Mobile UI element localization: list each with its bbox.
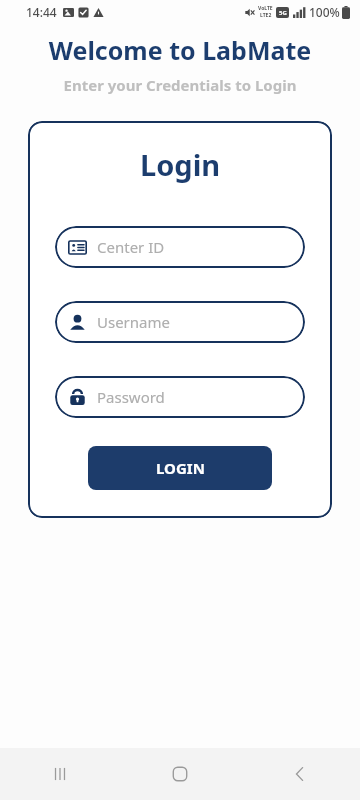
staticText: 100% (309, 4, 340, 20)
staticText: 5G (279, 9, 287, 17)
staticText: LOGIN (156, 458, 205, 478)
staticText: Password (97, 387, 165, 407)
button[interactable]: Username (55, 301, 305, 343)
button[interactable]: Center ID (55, 226, 305, 268)
staticText: 14:44 (26, 4, 57, 20)
button[interactable]: Recent apps (36, 750, 84, 798)
button[interactable]: LOGIN (88, 446, 272, 490)
button[interactable]: Home (156, 750, 204, 798)
staticText: LTE2 (260, 12, 272, 19)
staticText: Enter your Credentials to Login (0, 75, 360, 95)
button[interactable]: Password (55, 376, 305, 418)
button[interactable]: Back (276, 750, 324, 798)
staticText: Login (140, 145, 221, 184)
staticText: Welcome to LabMate (0, 33, 360, 67)
staticText: VoLTE (258, 5, 273, 12)
staticText: Username (97, 312, 170, 332)
staticText: Center ID (97, 237, 165, 257)
